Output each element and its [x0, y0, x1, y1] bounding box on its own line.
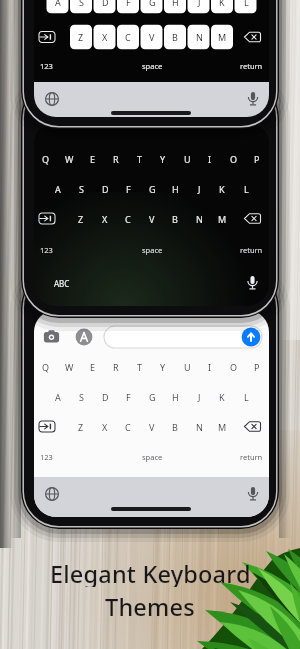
- staticText: O: [230, 153, 238, 165]
- staticText: ABC: [54, 278, 70, 289]
- staticText: return: [240, 245, 263, 255]
- staticText: space: [142, 452, 163, 462]
- staticText: R: [113, 153, 119, 165]
- staticText: G: [149, 0, 156, 8]
- staticText: P: [254, 153, 260, 165]
- staticText: M: [218, 213, 227, 225]
- staticText: I: [208, 361, 212, 373]
- staticText: R: [113, 361, 119, 373]
- staticText: N: [196, 213, 203, 225]
- staticText: D: [102, 391, 109, 403]
- staticText: Y: [160, 153, 166, 165]
- staticText: W: [65, 153, 74, 165]
- staticText: U: [184, 361, 191, 373]
- staticText: G: [149, 391, 156, 403]
- staticText: Y: [160, 361, 166, 373]
- staticText: V: [149, 421, 155, 433]
- staticText: T: [137, 361, 143, 373]
- staticText: J: [198, 183, 201, 195]
- button[interactable]: A: [34, 0, 269, 117]
- staticText: C: [125, 213, 131, 225]
- staticText: G: [149, 183, 156, 195]
- staticText: B: [172, 213, 178, 225]
- staticText: return: [240, 61, 263, 71]
- staticText: C: [125, 421, 131, 433]
- staticText: E: [90, 361, 96, 373]
- staticText: J: [198, 391, 201, 403]
- staticText: A: [55, 391, 61, 403]
- staticText: F: [126, 391, 131, 403]
- staticText: W: [65, 361, 74, 373]
- staticText: K: [219, 183, 225, 195]
- staticText: Z: [78, 31, 84, 43]
- staticText: L: [244, 391, 249, 403]
- staticText: space: [142, 61, 163, 71]
- staticText: H: [172, 183, 179, 195]
- staticText: V: [149, 31, 155, 43]
- staticText: M: [218, 31, 227, 43]
- staticText: L: [244, 183, 249, 195]
- staticText: T: [137, 153, 143, 165]
- staticText: S: [79, 0, 84, 8]
- staticText: I: [208, 153, 212, 165]
- staticText: V: [149, 213, 155, 225]
- staticText: space: [142, 245, 163, 255]
- staticText: M: [218, 421, 227, 433]
- staticText: X: [102, 421, 108, 433]
- staticText: F: [126, 183, 131, 195]
- staticText: D: [102, 183, 109, 195]
- staticText: K: [219, 0, 225, 8]
- staticText: L: [244, 0, 249, 8]
- staticText: 123: [40, 61, 53, 71]
- staticText: X: [102, 31, 108, 43]
- staticText: Q: [42, 153, 50, 165]
- staticText: E: [90, 153, 96, 165]
- staticText: P: [254, 361, 260, 373]
- staticText: H: [172, 391, 179, 403]
- staticText: H: [172, 0, 179, 8]
- staticText: Z: [78, 421, 84, 433]
- staticText: Elegant Keyboard: [50, 558, 251, 587]
- staticText: C: [125, 31, 131, 43]
- staticText: return: [240, 452, 263, 462]
- staticText: U: [184, 153, 191, 165]
- staticText: Z: [78, 213, 84, 225]
- staticText: S: [79, 391, 84, 403]
- staticText: O: [230, 361, 238, 373]
- button[interactable]: Q: [34, 122, 269, 306]
- staticText: 123: [40, 452, 53, 462]
- staticText: N: [196, 31, 203, 43]
- staticText: N: [196, 421, 203, 433]
- staticText: J: [198, 0, 201, 8]
- staticText: A: [55, 0, 61, 8]
- staticText: F: [126, 0, 131, 8]
- staticText: D: [102, 0, 109, 8]
- staticText: Themes: [105, 591, 195, 620]
- staticText: Q: [42, 361, 50, 373]
- staticText: X: [102, 213, 108, 225]
- staticText: K: [219, 391, 225, 403]
- staticText: B: [172, 421, 178, 433]
- staticText: A: [55, 183, 61, 195]
- button[interactable]: Q: [34, 310, 269, 517]
- staticText: 123: [40, 245, 53, 255]
- staticText: B: [172, 31, 178, 43]
- staticText: S: [79, 183, 84, 195]
